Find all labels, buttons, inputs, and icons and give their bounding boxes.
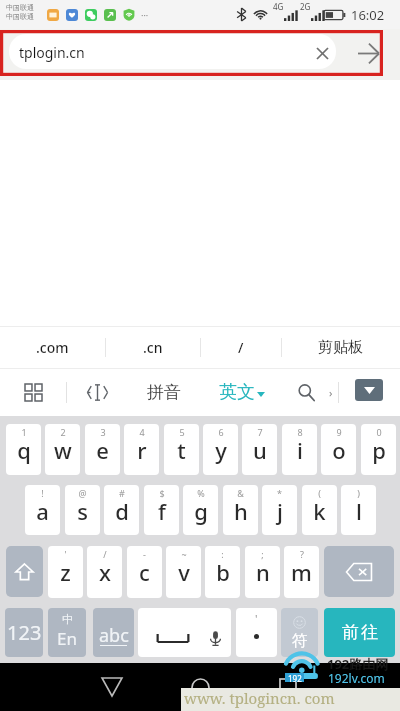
button[interactable]: 0 xyxy=(361,424,396,475)
staticText: e xyxy=(96,435,109,465)
button[interactable]: 123 xyxy=(5,608,43,657)
button[interactable]: @ xyxy=(65,485,100,535)
button[interactable]: % xyxy=(183,485,218,535)
staticText: 中 xyxy=(62,612,73,626)
staticText: h xyxy=(234,496,248,526)
staticText: $ xyxy=(159,487,165,499)
button[interactable]: 5 xyxy=(164,424,199,475)
button[interactable]: - xyxy=(127,546,162,598)
staticText: ? xyxy=(300,548,304,560)
button[interactable]: Space xyxy=(138,608,231,657)
button[interactable]: ' xyxy=(48,546,83,598)
button[interactable]: / xyxy=(87,546,122,598)
staticText: g xyxy=(194,496,208,526)
staticText: ) xyxy=(357,487,360,499)
staticText: & xyxy=(237,487,244,499)
staticText: r xyxy=(137,435,147,465)
staticText: f xyxy=(158,496,166,526)
button[interactable]: Search xyxy=(290,369,323,416)
staticText: 4 xyxy=(139,426,145,438)
button[interactable]: Backspace xyxy=(324,546,394,597)
button[interactable]: ( xyxy=(302,485,337,535)
button[interactable]: ) xyxy=(341,485,376,535)
button[interactable]: 6 xyxy=(203,424,238,475)
button[interactable]: 剪贴板 xyxy=(281,327,400,368)
staticText: 192lv.com xyxy=(328,670,385,686)
button[interactable]: .com xyxy=(0,327,105,368)
button[interactable]: 中 xyxy=(48,608,86,657)
button[interactable]: 1 xyxy=(6,424,41,475)
button[interactable]: Recents xyxy=(263,663,313,711)
staticText: 16:02 xyxy=(351,6,385,24)
button[interactable]: Home xyxy=(175,663,225,711)
button[interactable]: $ xyxy=(144,485,179,535)
staticText: c xyxy=(139,557,150,587)
button[interactable]: ~ xyxy=(166,546,201,598)
button[interactable]: / xyxy=(200,327,281,368)
staticText: › xyxy=(329,385,333,400)
staticText: www. tplogincn. com xyxy=(184,688,335,708)
staticText: 符 xyxy=(292,631,308,651)
staticText: 6 xyxy=(218,426,224,438)
button[interactable]: ! xyxy=(25,485,60,535)
staticText: u xyxy=(253,435,267,465)
button[interactable]: Hide keyboard xyxy=(355,379,383,401)
button[interactable]: * xyxy=(262,485,297,535)
staticText: 0 xyxy=(376,426,382,438)
button[interactable]: More xyxy=(324,369,338,416)
button[interactable]: 英文 xyxy=(214,369,270,416)
staticText: - xyxy=(143,548,146,560)
staticText: q xyxy=(17,435,31,465)
button[interactable]: : xyxy=(205,546,240,598)
staticText: 7 xyxy=(257,426,263,438)
staticText: z xyxy=(60,557,71,587)
staticText: 5 xyxy=(179,426,185,438)
staticText: w xyxy=(54,435,72,465)
button[interactable]: 4 xyxy=(124,424,159,475)
staticText: ' xyxy=(255,611,258,626)
button[interactable]: ; xyxy=(245,546,280,598)
button[interactable]: 8 xyxy=(282,424,317,475)
staticText: .com xyxy=(36,338,69,357)
button[interactable]: 前往 xyxy=(324,608,395,657)
button[interactable]: # xyxy=(104,485,139,535)
button[interactable]: abc xyxy=(93,608,134,657)
button[interactable]: Go xyxy=(352,37,385,70)
button[interactable]: 2 xyxy=(45,424,80,475)
staticText: * xyxy=(277,487,282,499)
button[interactable]: 9 xyxy=(321,424,356,475)
staticText: .cn xyxy=(143,338,163,357)
button[interactable]: 符 xyxy=(281,608,318,657)
staticText: k xyxy=(313,496,326,526)
button[interactable]: Keyboard layouts xyxy=(12,369,54,416)
staticText: / xyxy=(103,548,107,560)
button[interactable]: 3 xyxy=(85,424,120,475)
staticText: 3 xyxy=(100,426,106,438)
button[interactable]: 7 xyxy=(242,424,277,475)
button[interactable]: & xyxy=(223,485,258,535)
staticText: t xyxy=(177,435,186,465)
button[interactable]: 拼音 xyxy=(138,369,190,416)
button[interactable]: ? xyxy=(284,546,319,598)
staticText: 1 xyxy=(21,426,27,438)
staticText: 英文 xyxy=(219,381,255,404)
staticText: a xyxy=(36,496,49,526)
button[interactable]: Back xyxy=(87,663,137,711)
button[interactable]: Clear xyxy=(311,42,333,64)
staticText: 2 xyxy=(60,426,66,438)
staticText: ; xyxy=(261,548,264,560)
staticText: En xyxy=(57,627,77,650)
button[interactable]: Period xyxy=(236,608,277,657)
staticText: y xyxy=(215,435,227,465)
staticText: % xyxy=(197,487,205,499)
staticText: 中国联通 xyxy=(6,3,34,12)
staticText: d xyxy=(115,496,129,526)
button[interactable]: .cn xyxy=(105,327,200,368)
button[interactable]: Shift xyxy=(6,546,43,597)
staticText: ! xyxy=(41,487,44,499)
staticText: ' xyxy=(64,548,67,560)
button[interactable]: Move cursor xyxy=(76,369,118,416)
staticText: 前往 xyxy=(341,622,379,643)
staticText: 9 xyxy=(336,426,342,438)
button[interactable]: tplogin.cn xyxy=(9,34,336,69)
